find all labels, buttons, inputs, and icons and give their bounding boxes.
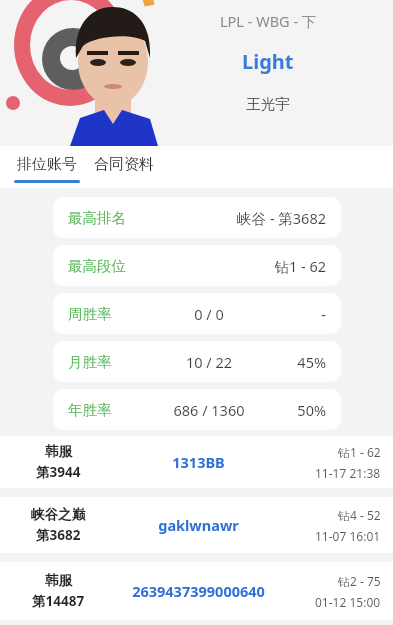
staticText: 11-17 21:38 <box>315 465 381 481</box>
button[interactable]: 最高段位 <box>53 245 341 286</box>
staticText: 峡谷之巅 <box>31 506 85 523</box>
staticText: 排位账号 <box>17 155 77 174</box>
staticText: - <box>276 304 326 324</box>
staticText: LPL - WBG - 下 <box>220 11 317 31</box>
staticText: 合同资料 <box>94 155 154 174</box>
staticText: 峡谷 - 第3682 <box>126 208 326 228</box>
staticText: 韩服 <box>45 572 72 589</box>
staticText: 钻2 - 75 <box>338 573 381 589</box>
staticText: 01-12 15:00 <box>315 594 381 610</box>
staticText: 2639437399000640 <box>104 581 293 601</box>
staticText: 月胜率 <box>68 353 142 371</box>
staticText: Light <box>242 48 294 75</box>
button[interactable]: 周胜率 <box>53 293 341 334</box>
staticText: 11-07 16:01 <box>315 528 381 544</box>
button[interactable]: 最高排名 <box>53 197 341 238</box>
staticText: 周胜率 <box>68 305 142 323</box>
button[interactable]: 月胜率 <box>53 341 341 382</box>
staticText: 第14487 <box>32 592 85 610</box>
staticText: gaklwnawr <box>104 515 293 535</box>
button[interactable]: 韩服 <box>0 436 393 488</box>
staticText: 最高排名 <box>68 209 126 227</box>
staticText: 年胜率 <box>68 401 142 419</box>
staticText: 0 / 0 <box>142 304 276 324</box>
button[interactable]: 韩服 <box>0 562 393 620</box>
button[interactable]: 排位账号 <box>14 151 80 183</box>
staticText: 第3944 <box>36 463 81 481</box>
staticText: 韩服 <box>45 443 72 460</box>
staticText: 钻4 - 52 <box>338 507 381 523</box>
staticText: 最高段位 <box>68 257 126 275</box>
staticText: 50% <box>276 400 326 420</box>
button[interactable]: 峡谷之巅 <box>0 497 393 553</box>
staticText: 10 / 22 <box>142 352 276 372</box>
staticText: 钻1 - 62 <box>338 444 381 460</box>
staticText: 钻1 - 62 <box>126 256 326 276</box>
button[interactable]: 合同资料 <box>94 155 154 179</box>
staticText: 45% <box>276 352 326 372</box>
staticText: 686 / 1360 <box>142 400 276 420</box>
button[interactable]: 年胜率 <box>53 389 341 430</box>
staticText: 1313BB <box>104 452 293 472</box>
staticText: 王光宇 <box>246 95 290 113</box>
staticText: 第3682 <box>36 526 81 544</box>
